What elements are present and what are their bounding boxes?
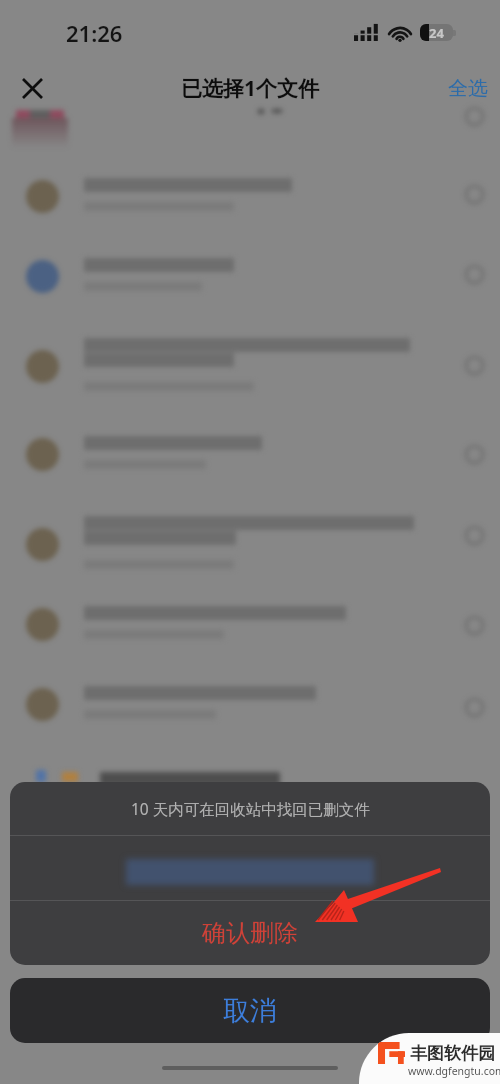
staticText: 24 — [429, 24, 444, 41]
button[interactable] — [10, 836, 490, 900]
staticText: 全选 — [448, 76, 488, 101]
button[interactable] — [0, 594, 500, 668]
staticText: 21:26 — [66, 18, 123, 48]
button[interactable]: 取消 — [10, 978, 490, 1043]
staticText: 丰图软件园 — [410, 1043, 495, 1064]
button[interactable] — [0, 424, 500, 498]
button[interactable] — [0, 166, 500, 240]
button[interactable]: 全选 — [436, 66, 500, 111]
button[interactable] — [0, 246, 500, 320]
staticText: 已选择1个文件 — [181, 74, 320, 103]
staticText: 确认删除 — [202, 918, 298, 948]
staticText: 10 天内可在回收站中找回已删文件 — [131, 798, 370, 819]
button[interactable]: 确认删除 — [10, 901, 490, 965]
button[interactable]: Close — [10, 66, 54, 110]
button[interactable] — [0, 674, 500, 748]
button[interactable] — [0, 504, 500, 600]
staticText: 取消 — [223, 994, 277, 1028]
staticText: www.dgfengtu.com — [408, 1064, 500, 1078]
button[interactable] — [0, 326, 500, 422]
